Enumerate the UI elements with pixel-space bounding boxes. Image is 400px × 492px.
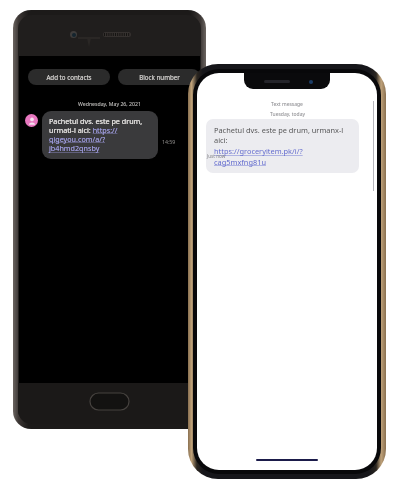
- button[interactable]: Add to contacts: [28, 69, 110, 85]
- staticText: Wednesday, May 26, 2021: [78, 100, 141, 107]
- staticText: 14:59: [162, 138, 176, 145]
- staticText: Pachetul dvs. este pe drum, urmati-l aic…: [49, 116, 151, 154]
- staticText: Just now: [207, 153, 226, 159]
- staticText: Block number: [139, 73, 180, 81]
- other: Contact avatar: [25, 114, 38, 127]
- button[interactable]: Home: [90, 393, 129, 410]
- staticText: Text message: [271, 101, 303, 108]
- button[interactable]: Pachetul dvs. este pe drum, urmati-l aic…: [42, 111, 158, 159]
- staticText: Tuesday, today: [270, 111, 305, 118]
- staticText: Add to contacts: [46, 73, 92, 81]
- button[interactable]: Pachetul dvs. este pe drum, urmanx-l aic…: [206, 119, 359, 173]
- staticText: Pachetul dvs. este pe drum, urmanx-l aic…: [214, 125, 351, 167]
- button[interactable]: Block number: [118, 69, 200, 85]
